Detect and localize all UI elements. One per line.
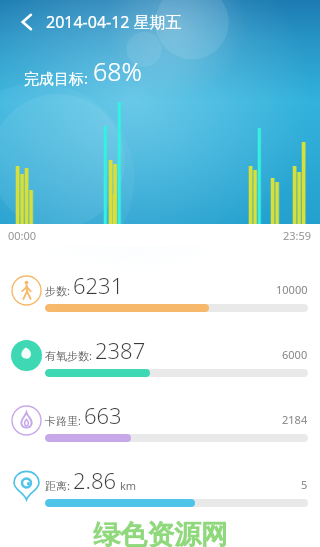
staticText: 卡路里: [45, 413, 81, 428]
staticText: 2.86 [73, 465, 117, 495]
button[interactable]: 步数: [0, 258, 320, 323]
button[interactable]: Back [8, 3, 46, 41]
staticText: 有氧步数: [45, 348, 92, 363]
button[interactable]: 有氧步数: [0, 323, 320, 388]
staticText: 步数: [45, 283, 70, 298]
staticText: 6000 [282, 347, 308, 362]
staticText: 10000 [276, 282, 308, 297]
button[interactable]: 距离: [0, 453, 320, 518]
staticText: 6231 [73, 270, 124, 300]
staticText: 绿色资源网 [93, 518, 228, 547]
staticText: 2184 [282, 412, 308, 427]
staticText: 00:00 [8, 228, 37, 243]
staticText: 5 [301, 477, 308, 492]
staticText: 663 [84, 400, 122, 430]
staticText: km [120, 478, 137, 493]
staticText: 2014-04-12 星期五 [46, 11, 182, 33]
staticText: 2387 [95, 335, 146, 365]
staticText: 距离: [45, 478, 70, 493]
staticText: 68% [93, 54, 142, 88]
staticText: 完成目标: [24, 68, 89, 88]
button[interactable]: 卡路里: [0, 388, 320, 453]
staticText: 23:59 [283, 228, 312, 243]
